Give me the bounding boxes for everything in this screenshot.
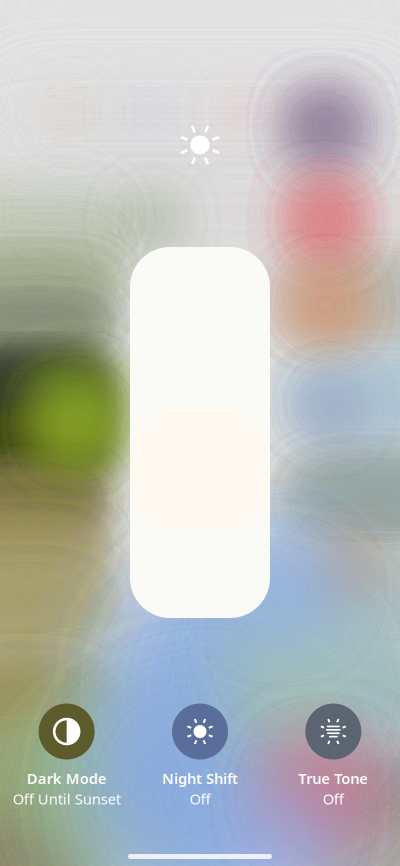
staticText: Off xyxy=(323,789,344,808)
staticText: Night Shift xyxy=(162,768,238,788)
button[interactable]: True Tone xyxy=(267,703,400,808)
staticText: Dark Mode xyxy=(27,768,107,788)
staticText: Off Until Sunset xyxy=(13,789,121,808)
button[interactable]: Dark Mode xyxy=(0,703,133,808)
button[interactable]: Night Shift xyxy=(133,703,267,808)
staticText: Off xyxy=(189,789,210,808)
staticText: True Tone xyxy=(298,768,368,788)
